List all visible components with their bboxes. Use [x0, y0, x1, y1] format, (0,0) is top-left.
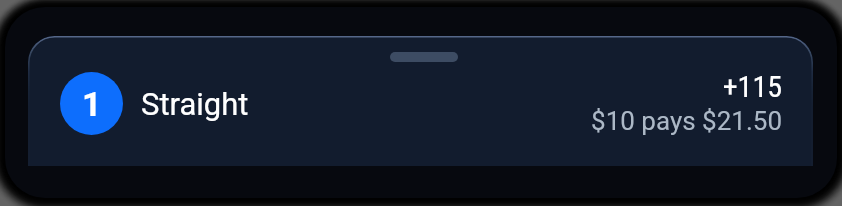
staticText: $10 pays $21.50	[479, 106, 782, 136]
staticText: +115	[628, 69, 782, 104]
button[interactable]: Drag handle	[28, 36, 813, 166]
staticText: Straight	[141, 86, 249, 122]
button[interactable]: Drag handle	[390, 52, 458, 62]
button[interactable]: 1	[60, 72, 123, 135]
staticText: 1	[82, 84, 102, 124]
